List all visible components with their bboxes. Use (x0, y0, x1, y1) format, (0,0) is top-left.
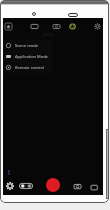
button[interactable]: Home (3, 21, 13, 31)
button[interactable]: Settings (92, 21, 102, 31)
button[interactable]: Scene mode (3, 40, 52, 51)
button[interactable]: Record (46, 178, 60, 192)
staticText: Application Mode (15, 54, 48, 59)
button[interactable]: Application Mode (3, 51, 52, 62)
button[interactable]: Camera switch (51, 21, 61, 31)
button[interactable]: Settings (5, 181, 15, 191)
button[interactable]: Aspect ratio (29, 21, 39, 31)
button[interactable]: Gallery (89, 182, 99, 192)
button[interactable]: Take photo (72, 181, 82, 191)
button[interactable]: Flash (67, 21, 77, 31)
button[interactable]: Photo video mode toggle (19, 183, 33, 189)
staticText: Remote control (15, 65, 44, 70)
staticText: 4K/30 (43, 32, 54, 37)
staticText: Scene mode (15, 43, 39, 48)
button[interactable]: Remote control (3, 62, 52, 73)
